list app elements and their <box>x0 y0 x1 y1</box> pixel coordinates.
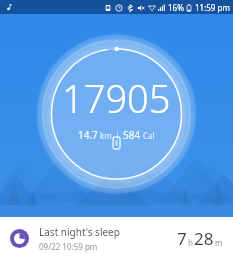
staticText: m <box>215 237 223 248</box>
staticText: 28 <box>194 227 214 250</box>
staticText: 16% <box>168 2 184 13</box>
staticText: 7 <box>177 227 187 250</box>
staticText: h <box>188 237 193 248</box>
staticText: km <box>100 130 112 141</box>
staticText: 17905 <box>62 72 171 124</box>
staticText: Cal <box>143 130 155 141</box>
staticText: 584 <box>123 128 141 142</box>
button[interactable]: Device sync <box>113 137 120 149</box>
button[interactable]: Last night's sleep <box>0 217 233 260</box>
staticText: Last night's sleep <box>39 225 120 239</box>
staticText: 11:59 pm <box>195 2 230 13</box>
staticText: 14.7 <box>78 128 98 142</box>
staticText: 09/22 10:59 pm <box>39 241 98 252</box>
